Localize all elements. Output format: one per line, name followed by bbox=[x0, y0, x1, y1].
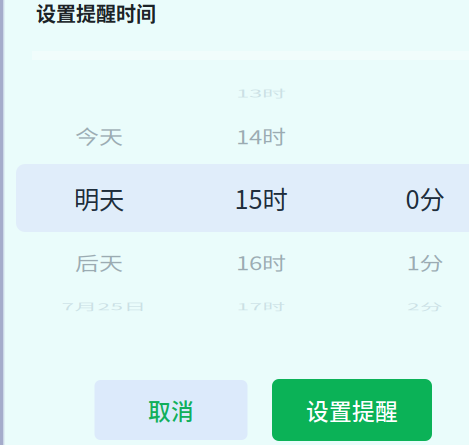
staticText: 今天 bbox=[75, 119, 123, 153]
staticText: 7月25日 bbox=[61, 290, 146, 322]
staticText: 设置提醒 bbox=[306, 394, 398, 426]
staticText: 13时 bbox=[236, 76, 286, 110]
staticText: 2分 bbox=[407, 290, 443, 322]
staticText: 0分 bbox=[405, 180, 444, 216]
staticText: 取消 bbox=[148, 394, 194, 426]
staticText: 17时 bbox=[236, 290, 285, 322]
staticText: 16时 bbox=[236, 245, 286, 279]
staticText: 14时 bbox=[236, 119, 286, 153]
staticText: 明天 bbox=[74, 180, 124, 216]
staticText: 15时 bbox=[234, 180, 287, 216]
staticText: 设置提醒时间 bbox=[36, 0, 156, 27]
button[interactable]: 取消 bbox=[94, 380, 247, 440]
staticText: 1分 bbox=[406, 245, 443, 279]
button[interactable]: 设置提醒 bbox=[272, 379, 432, 441]
staticText: 后天 bbox=[75, 245, 123, 279]
